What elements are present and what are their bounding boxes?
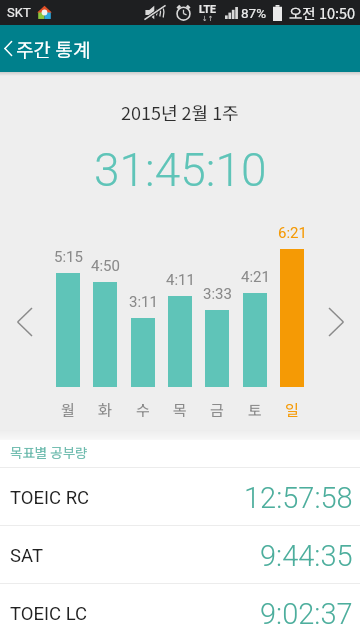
staticText: 9:44:35	[260, 539, 353, 573]
staticText: 금	[210, 399, 224, 421]
staticText: 31:45:10	[94, 143, 267, 197]
staticText: 화	[98, 399, 112, 421]
staticText: 12:57:58	[244, 481, 353, 515]
button[interactable]: TOEIC RC	[0, 468, 360, 525]
staticText: 5:15	[54, 248, 83, 266]
staticText: 4:21	[241, 268, 270, 286]
staticText: 87%	[241, 5, 267, 21]
staticText: 목표별 공부량	[10, 442, 88, 462]
staticText: 토	[248, 399, 262, 421]
button[interactable]: SAT	[0, 526, 360, 583]
staticText: 일	[285, 399, 299, 421]
staticText: 4:50	[91, 257, 120, 275]
staticText: 2015년 2월 1주	[121, 99, 239, 125]
staticText: 3:33	[203, 285, 232, 303]
staticText: 오전 10:50	[289, 2, 356, 23]
staticText: 3:11	[129, 293, 158, 311]
staticText: 주간 통계	[16, 35, 91, 63]
staticText: TOEIC RC	[10, 487, 90, 509]
button[interactable]: Next week	[321, 307, 351, 337]
staticText: 6:21	[278, 224, 307, 242]
staticText: LTE	[199, 3, 216, 15]
staticText: 월	[61, 399, 75, 421]
staticText: TOEIC LC	[10, 603, 88, 625]
staticText: 9:02:37	[260, 597, 353, 631]
button[interactable]: Back	[0, 25, 16, 72]
staticText: ↓↑	[202, 15, 214, 23]
button[interactable]: Previous week	[9, 307, 39, 337]
button[interactable]: TOEIC LC	[0, 584, 360, 640]
staticText: 목	[173, 399, 187, 421]
staticText: SKT	[7, 5, 31, 20]
staticText: 4:11	[166, 271, 195, 289]
staticText: SAT	[10, 545, 43, 567]
staticText: 수	[136, 399, 150, 421]
